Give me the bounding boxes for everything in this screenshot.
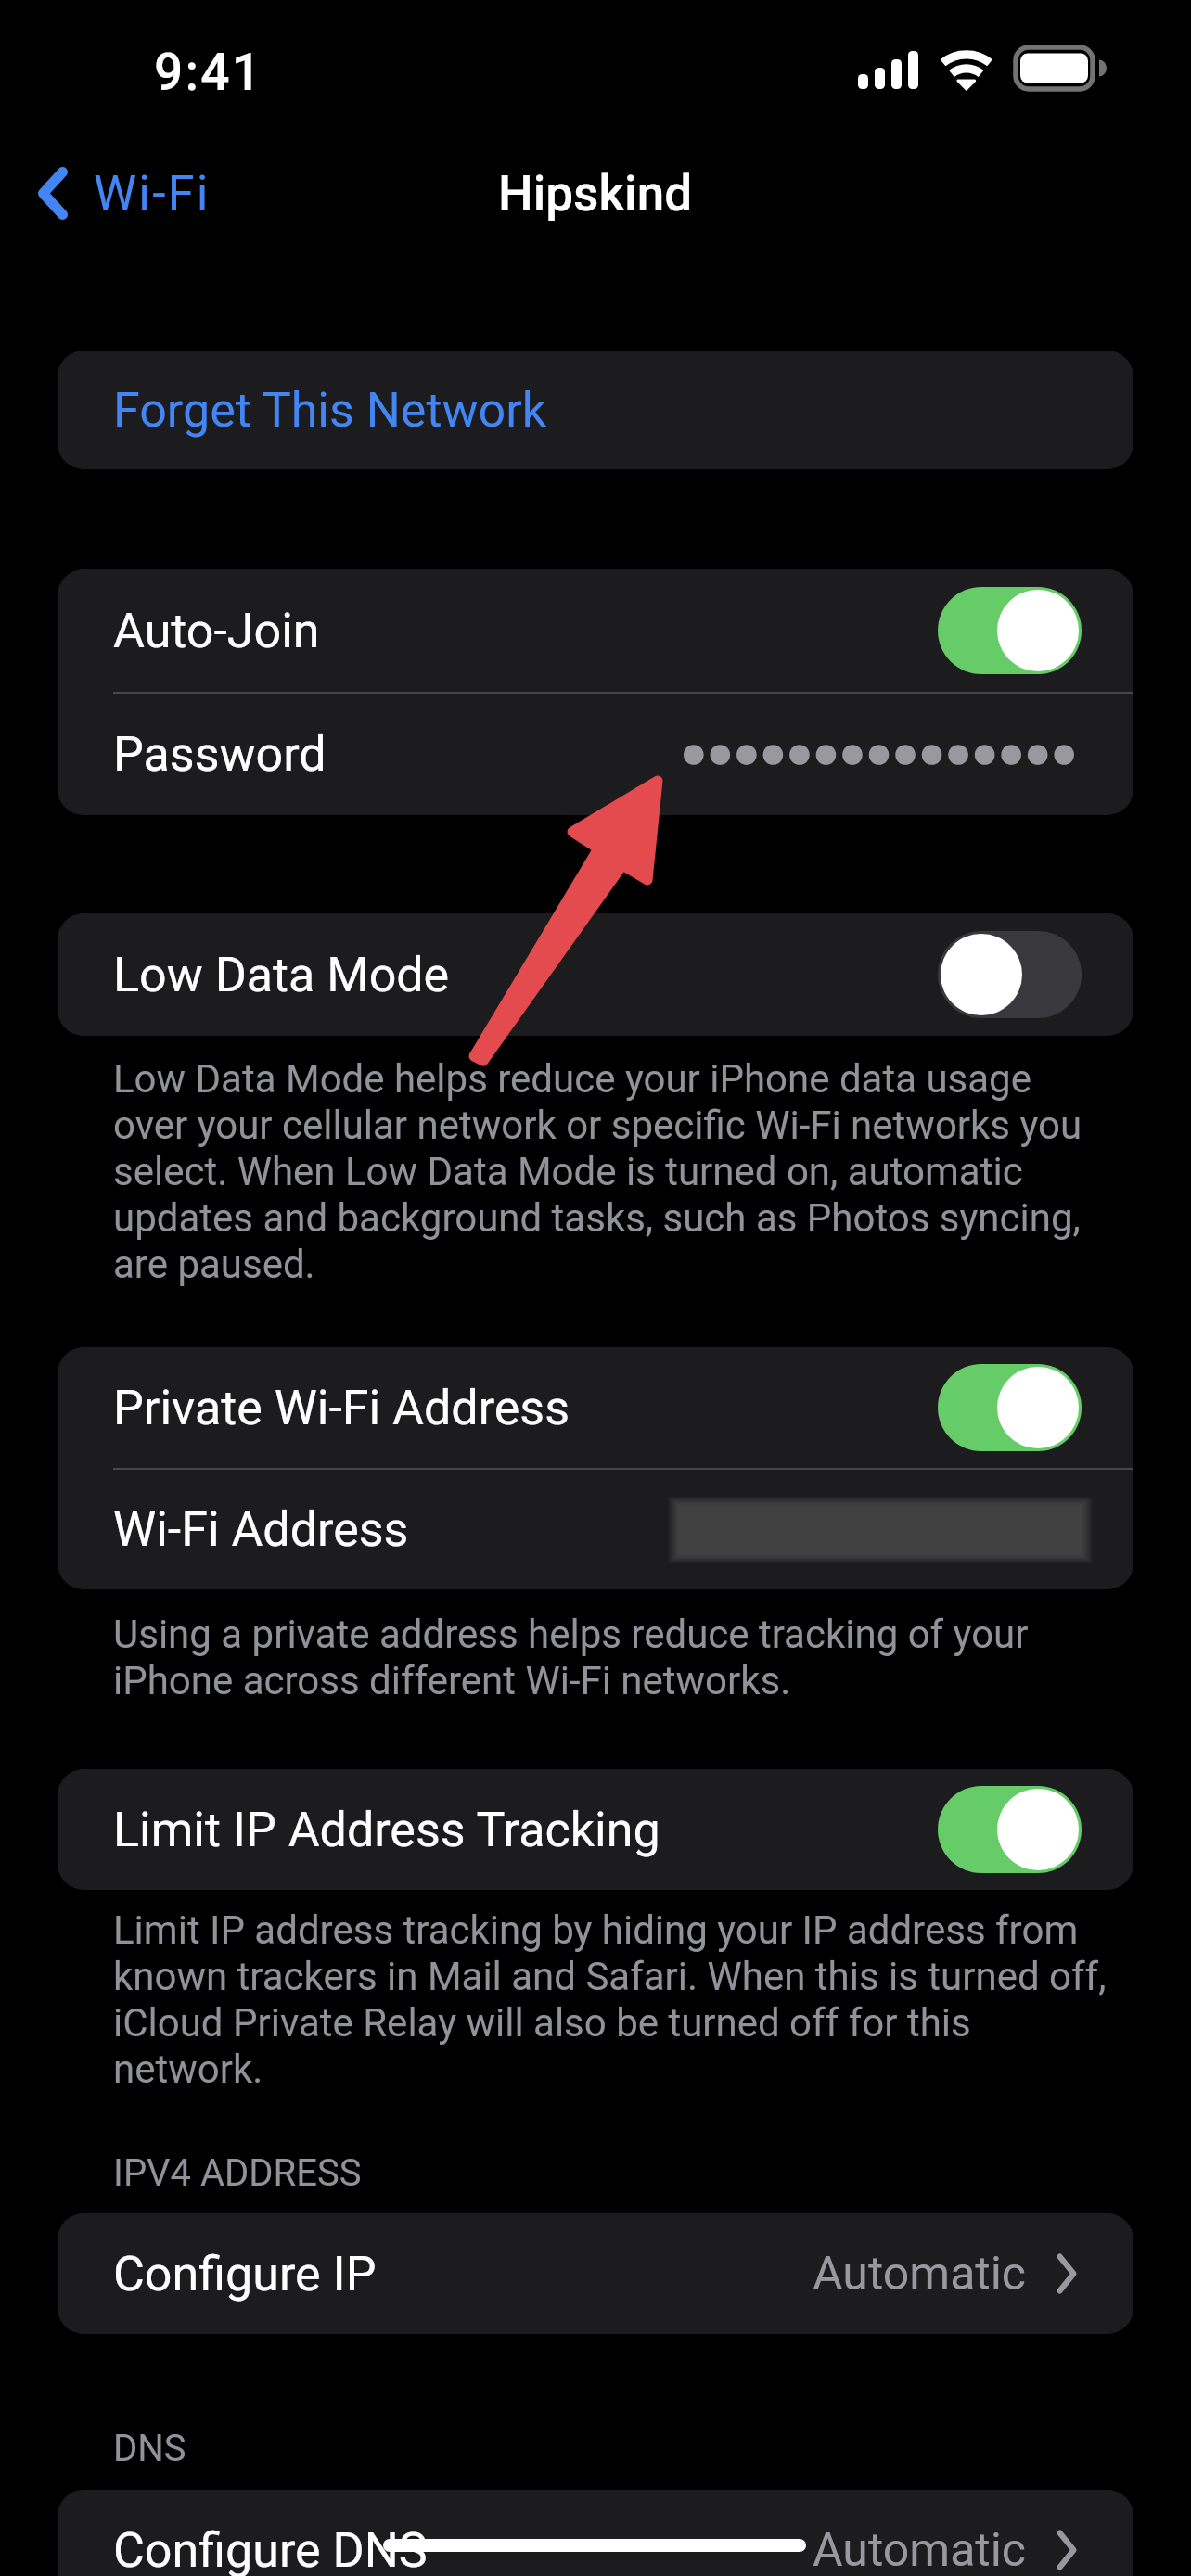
staticText: Wi-Fi Address	[113, 1501, 409, 1558]
button[interactable]: Back to Wi-Fi	[25, 150, 227, 236]
staticText: Configure IP	[113, 2246, 377, 2302]
button[interactable]: Wi-Fi Address	[58, 1470, 1133, 1589]
staticText: Low Data Mode helps reduce your iPhone d…	[113, 1056, 1098, 1287]
button[interactable]: Auto-Join	[58, 569, 1133, 692]
button[interactable]: Configure IP	[58, 2213, 1133, 2334]
staticText: Low Data Mode	[113, 947, 450, 1003]
button[interactable]: Password	[58, 694, 1133, 815]
staticText: Hipskind	[498, 165, 693, 223]
staticText: Limit IP Address Tracking	[113, 1802, 660, 1858]
staticText: Password	[113, 726, 327, 783]
staticText: Limit IP address tracking by hiding your…	[113, 1907, 1108, 2092]
staticText: 9:41	[154, 43, 263, 102]
staticText: Automatic	[813, 2523, 1027, 2576]
button[interactable]: Private Wi-Fi Address	[58, 1347, 1133, 1468]
button[interactable]: Configure DNS	[58, 2490, 1133, 2576]
staticText: Private Wi-Fi Address	[113, 1380, 570, 1436]
button[interactable]: Toggle on	[938, 1786, 1082, 1873]
staticText: Forget This Network	[113, 382, 547, 439]
staticText: Auto-Join	[113, 603, 320, 659]
button[interactable]: Toggle on	[938, 587, 1082, 674]
staticText: Automatic	[813, 2247, 1027, 2302]
staticText: Using a private address helps reduce tra…	[113, 1612, 1098, 1703]
staticText: IPV4 ADDRESS	[113, 2151, 362, 2195]
button[interactable]: Low Data Mode	[58, 913, 1133, 1036]
staticText: DNS	[113, 2427, 186, 2470]
staticText: Configure DNS	[113, 2522, 428, 2576]
button[interactable]: Limit IP Address Tracking	[58, 1769, 1133, 1890]
staticText: Wi-Fi	[94, 165, 211, 222]
button[interactable]: Toggle off	[938, 931, 1082, 1018]
button[interactable]: Forget This Network	[58, 351, 1133, 469]
button[interactable]: Toggle on	[938, 1364, 1082, 1451]
